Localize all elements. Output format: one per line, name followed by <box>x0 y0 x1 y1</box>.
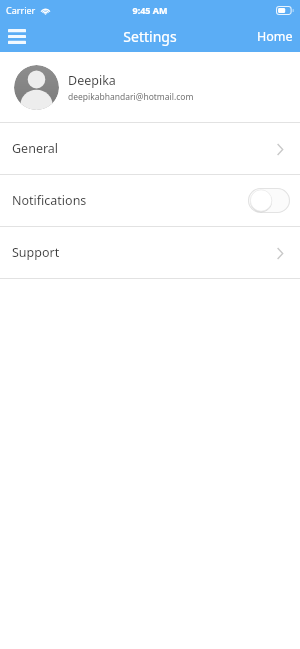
staticText: deepikabhandari@hotmail.com <box>68 91 194 103</box>
staticText: Notifications <box>12 192 248 209</box>
staticText: Deepika <box>68 72 116 89</box>
staticText: Support <box>12 244 270 261</box>
staticText: General <box>12 140 270 157</box>
staticText: Home <box>257 28 293 45</box>
button[interactable]: General <box>0 123 300 174</box>
button[interactable]: Notifications <box>0 175 300 226</box>
button[interactable]: Home <box>250 20 300 52</box>
button[interactable]: Open navigation menu <box>0 20 34 52</box>
staticText: Settings <box>123 27 177 46</box>
other: Open <box>270 243 290 263</box>
staticText: Carrier <box>6 4 36 16</box>
other: Open <box>270 139 290 159</box>
button[interactable]: Support <box>0 227 300 278</box>
button[interactable]: Deepika <box>0 52 300 122</box>
button[interactable]: Notifications toggle, off <box>248 188 290 213</box>
staticText: 9:45 AM <box>132 4 168 16</box>
